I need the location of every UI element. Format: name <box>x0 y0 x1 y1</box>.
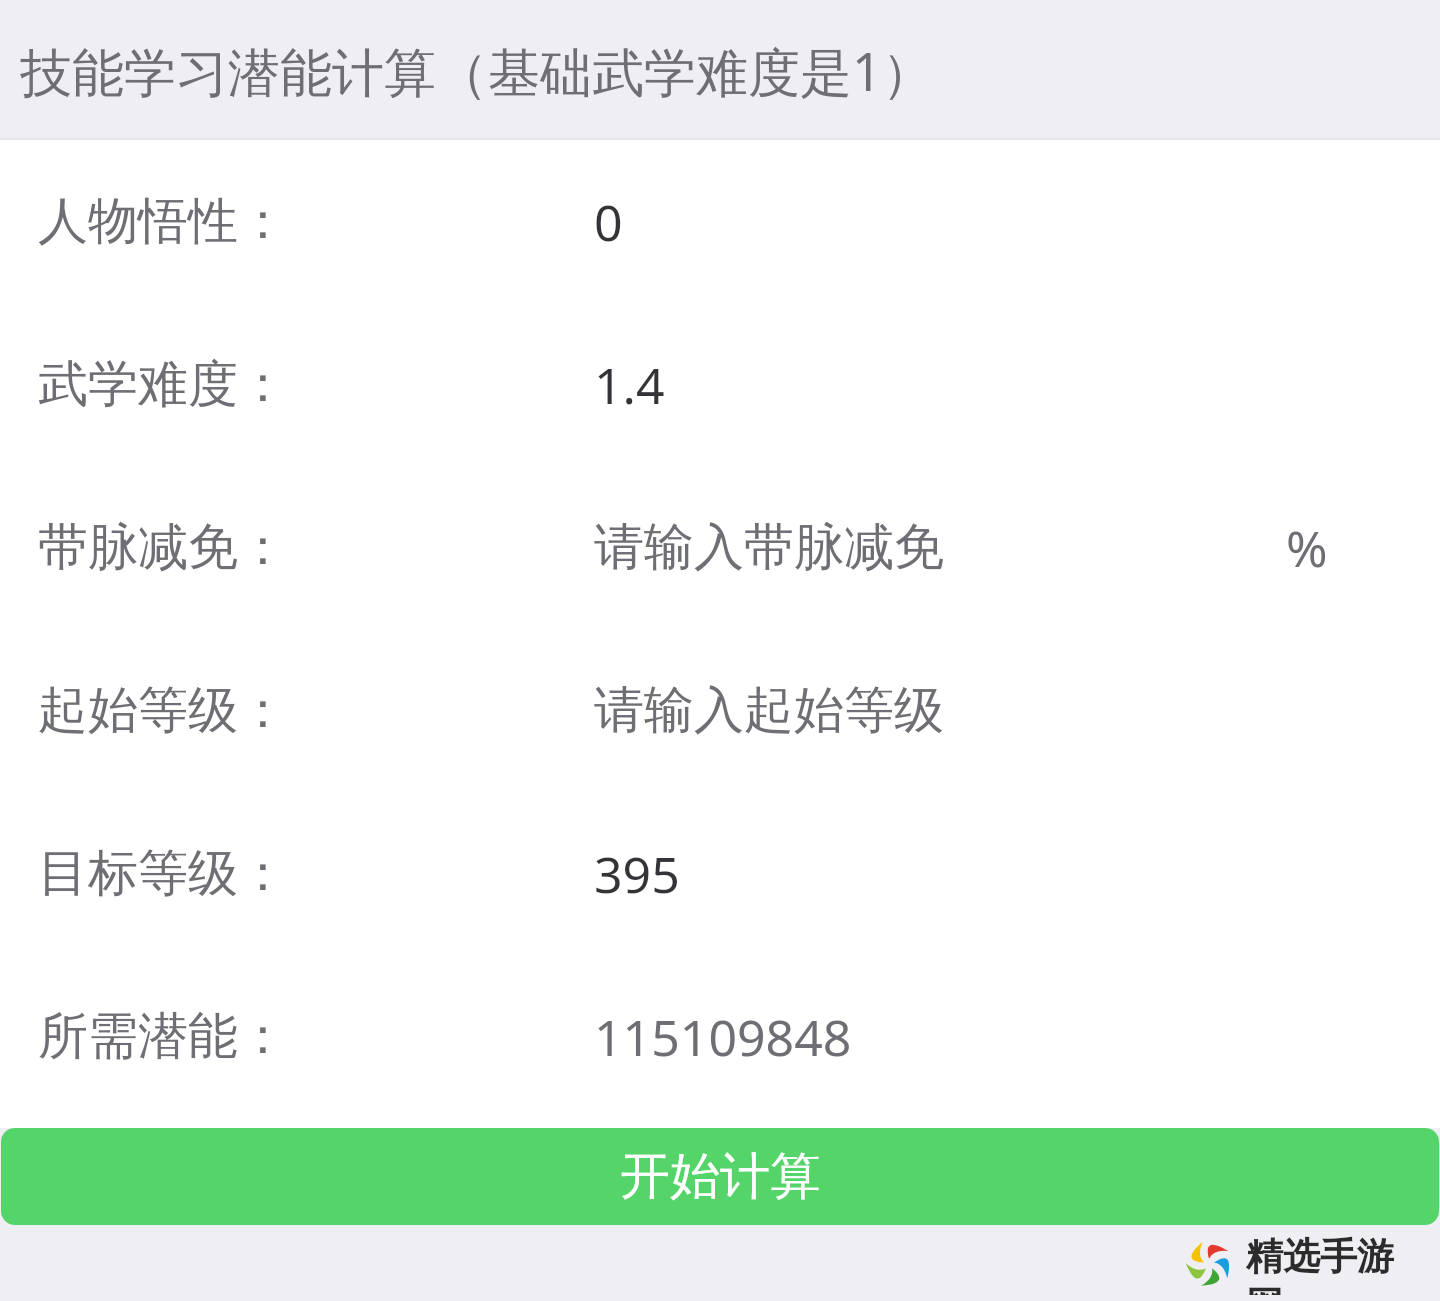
staticText: % <box>1286 514 1328 582</box>
staticText: 395 <box>594 840 680 908</box>
staticText: 人物悟性： <box>38 190 288 253</box>
staticText: 开始计算 <box>620 1145 820 1208</box>
staticText: 技能学习潜能计算（基础武学难度是1） <box>20 35 934 106</box>
staticText: 请输入带脉减免 <box>594 516 944 579</box>
staticText: 目标等级： <box>38 842 288 905</box>
staticText: 请输入起始等级 <box>594 679 944 742</box>
staticText: 起始等级： <box>38 679 288 742</box>
staticText: 武学难度： <box>38 353 288 416</box>
button[interactable]: 开始计算 <box>1 1128 1439 1225</box>
button[interactable]: 起始等级： <box>0 629 1440 792</box>
button[interactable]: 所需潜能： <box>0 955 1440 1118</box>
staticText: 带脉减免： <box>38 516 288 579</box>
button[interactable]: 人物悟性： <box>0 140 1440 303</box>
staticText: 115109848 <box>594 1003 852 1071</box>
staticText: 1.4 <box>594 351 665 419</box>
button[interactable]: 武学难度： <box>0 303 1440 466</box>
staticText: 所需潜能： <box>38 1005 288 1068</box>
staticText: 0 <box>594 188 623 256</box>
button[interactable]: 目标等级： <box>0 792 1440 955</box>
staticText: 精选手游网 <box>1246 1233 1430 1295</box>
button[interactable]: 带脉减免： <box>0 466 1440 629</box>
